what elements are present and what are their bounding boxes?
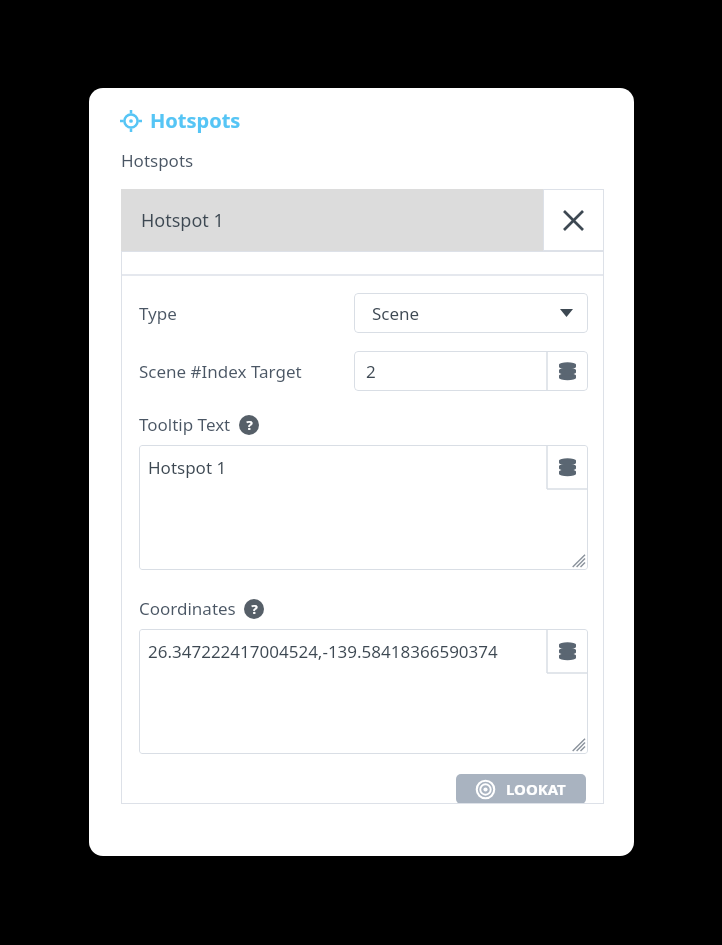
- button[interactable]: 2: [354, 351, 547, 391]
- button[interactable]: Remove hotspot: [543, 189, 604, 251]
- button[interactable]: Scene: [354, 293, 588, 333]
- staticText: Hotspots: [150, 107, 241, 134]
- staticText: ?: [251, 600, 258, 618]
- staticText: 26.347222417004524,-139.58418366590374: [148, 640, 498, 663]
- staticText: LOOKAT: [506, 779, 566, 799]
- button[interactable]: Hotspots: [120, 107, 241, 134]
- staticText: Hotspot 1: [148, 456, 227, 479]
- button[interactable]: Hotspot 1: [121, 189, 543, 251]
- button[interactable]: Hotspot 1: [139, 445, 588, 570]
- button[interactable]: Bind data: [547, 445, 588, 489]
- staticText: Hotspot 1: [141, 208, 224, 233]
- button[interactable]: Bind data: [547, 629, 588, 673]
- staticText: Hotspots: [121, 149, 194, 172]
- staticText: Scene #Index Target: [139, 360, 302, 383]
- button[interactable]: LOOKAT: [456, 774, 586, 804]
- staticText: Tooltip Text: [139, 413, 231, 436]
- staticText: ?: [246, 416, 253, 434]
- button[interactable]: Bind data: [547, 351, 588, 391]
- staticText: Scene: [372, 302, 420, 325]
- staticText: Type: [139, 302, 177, 325]
- button[interactable]: Help for Coordinates: [244, 599, 264, 619]
- button[interactable]: Help for Tooltip Text: [239, 415, 259, 435]
- staticText: 2: [366, 360, 376, 383]
- button[interactable]: 26.347222417004524,-139.58418366590374: [139, 629, 588, 754]
- other: Hotspots: [120, 110, 142, 132]
- staticText: Coordinates: [139, 597, 236, 620]
